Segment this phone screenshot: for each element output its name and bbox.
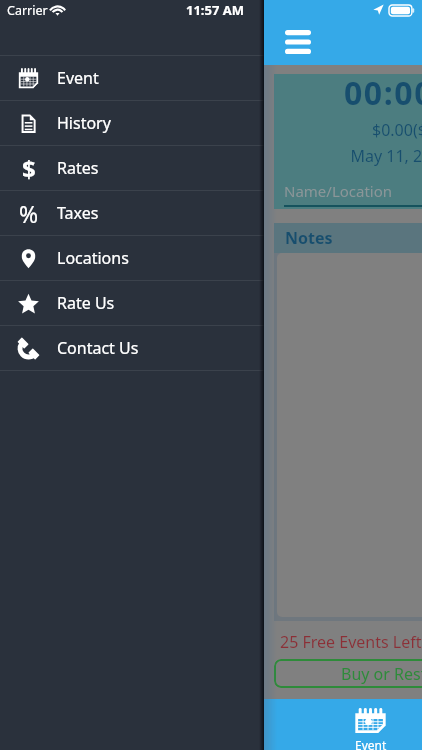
button[interactable]: Locations — [0, 236, 264, 280]
staticText: Notes — [285, 227, 333, 249]
button[interactable]: Event — [264, 699, 422, 750]
staticText: Rates — [57, 157, 99, 179]
button[interactable]: Contact Us — [0, 326, 264, 370]
button[interactable]: Rate Us — [0, 281, 264, 325]
button[interactable]: Open navigation menu — [285, 30, 311, 54]
staticText: History — [57, 112, 111, 134]
staticText: % — [19, 198, 39, 229]
button[interactable]: Buy or Restore — [274, 659, 422, 688]
staticText: Buy or Restore — [341, 663, 422, 685]
staticText: Taxes — [57, 202, 99, 224]
staticText: Event — [355, 737, 387, 750]
button[interactable]: % — [0, 191, 264, 235]
staticText: 25 Free Events Left — [280, 631, 422, 653]
staticText: Rate Us — [57, 292, 115, 314]
button[interactable]: $ — [0, 146, 264, 190]
staticText: Event — [57, 67, 99, 89]
staticText: Carrier — [7, 2, 48, 19]
staticText: May 11, 2018 — [278, 145, 422, 167]
staticText: Name/Location — [284, 181, 393, 201]
staticText: 00:00 — [267, 71, 422, 115]
staticText: $ — [22, 152, 36, 185]
button[interactable]: History — [0, 101, 264, 145]
staticText: Contact Us — [57, 337, 139, 359]
button[interactable]: Event — [0, 56, 264, 100]
staticText: Locations — [57, 247, 129, 269]
staticText: $0.00($0.00/hr) — [372, 119, 422, 141]
staticText: 11:57 AM — [186, 1, 245, 19]
